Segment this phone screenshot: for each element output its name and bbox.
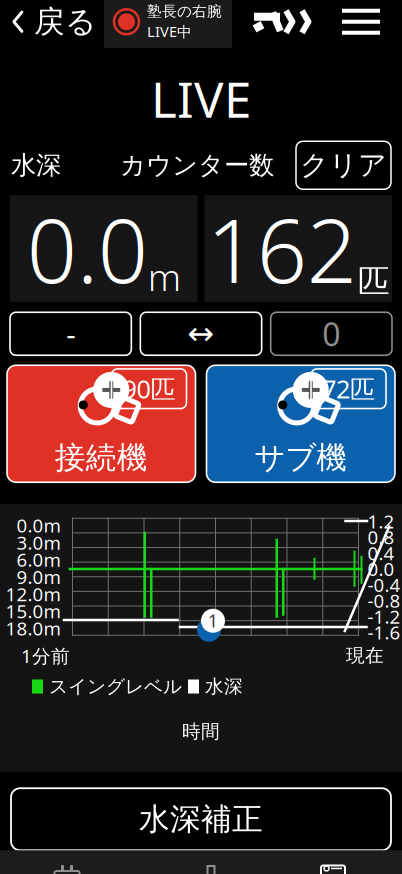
button[interactable]: 0 bbox=[271, 312, 392, 355]
staticText: 3.0m bbox=[16, 530, 60, 555]
staticText: 1分前 bbox=[21, 643, 70, 668]
button[interactable]: 72匹 bbox=[206, 365, 395, 482]
staticText: LIVE中 bbox=[147, 21, 192, 41]
staticText: カウンター数 bbox=[120, 150, 274, 181]
staticText: - bbox=[66, 314, 75, 353]
staticText: クリア bbox=[300, 148, 387, 182]
staticText: -1.6 bbox=[367, 620, 400, 645]
button[interactable]: 塾長の右腕 bbox=[104, 0, 232, 48]
staticText: 1.2 bbox=[367, 509, 394, 534]
button[interactable]: - bbox=[10, 312, 131, 355]
staticText: 時間 bbox=[182, 720, 220, 743]
staticText: 15.0m bbox=[5, 599, 60, 623]
staticText: 9.0m bbox=[16, 564, 60, 589]
button[interactable]: MyHistory bbox=[0, 850, 134, 874]
staticText: m bbox=[148, 252, 181, 301]
staticText: スイングレベル bbox=[49, 675, 182, 698]
button[interactable]: Setting bbox=[268, 850, 402, 874]
staticText: 0.8 bbox=[367, 525, 394, 549]
staticText: 90匹 bbox=[122, 372, 175, 405]
staticText: LIVE bbox=[151, 66, 251, 131]
staticText: 接続機 bbox=[55, 439, 148, 477]
staticText: 18.0m bbox=[5, 616, 60, 641]
button[interactable]: 戻る bbox=[4, 0, 104, 47]
staticText: 162 bbox=[207, 190, 357, 307]
staticText: 水深 bbox=[11, 150, 61, 181]
staticText: 1 bbox=[208, 609, 218, 632]
staticText: 塾長の右腕 bbox=[147, 2, 222, 20]
button[interactable]: MyData bbox=[134, 850, 268, 874]
button[interactable]: クリア bbox=[296, 141, 391, 189]
button[interactable]: Menu bbox=[334, 1, 388, 43]
staticText: 6.0m bbox=[16, 547, 60, 572]
staticText: 水深 bbox=[205, 675, 243, 698]
staticText: 現在 bbox=[346, 644, 384, 667]
staticText: 12.0m bbox=[5, 581, 60, 606]
button[interactable]: 90匹 bbox=[7, 365, 195, 482]
staticText: 0.0 bbox=[367, 556, 394, 581]
staticText: -0.4 bbox=[367, 572, 400, 597]
staticText: 72匹 bbox=[322, 372, 375, 405]
button[interactable]: ↔ bbox=[140, 312, 262, 355]
staticText: 0.0 bbox=[27, 190, 148, 307]
staticText: サブ機 bbox=[254, 439, 347, 477]
staticText: 匹 bbox=[358, 262, 390, 301]
staticText: -1.2 bbox=[367, 604, 400, 629]
staticText: 0 bbox=[322, 312, 340, 355]
staticText: 0.0m bbox=[16, 513, 60, 538]
staticText: -0.8 bbox=[367, 588, 400, 613]
staticText: 戻る bbox=[34, 3, 96, 41]
staticText: ↔ bbox=[187, 316, 214, 352]
staticText: 0.4 bbox=[367, 541, 394, 565]
staticText: 水深補正 bbox=[139, 800, 263, 838]
button[interactable]: 水深補正 bbox=[11, 788, 391, 850]
